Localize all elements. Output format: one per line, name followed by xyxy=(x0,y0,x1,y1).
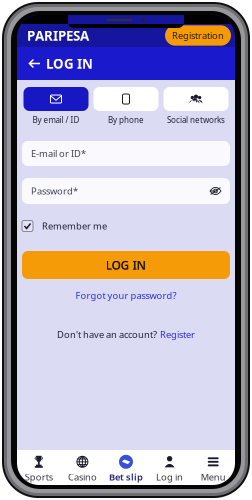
button[interactable]: Show password xyxy=(210,187,221,194)
button[interactable]: Remember me xyxy=(22,204,230,232)
button[interactable]: Forgot your password? xyxy=(55,279,196,300)
staticText: Remember me xyxy=(42,220,107,232)
staticText: Menu xyxy=(201,471,226,483)
staticText: Bet slip xyxy=(109,471,143,483)
button[interactable]: Back xyxy=(23,52,46,75)
staticText: By email / ID xyxy=(32,115,79,125)
button[interactable]: LOG IN xyxy=(22,232,230,279)
button[interactable]: Register xyxy=(160,328,195,341)
staticText: Social networks xyxy=(167,115,225,125)
staticText: LOG IN xyxy=(46,55,93,72)
staticText: Password* xyxy=(31,185,78,197)
staticText: Sports xyxy=(25,471,53,483)
staticText: Registration xyxy=(172,29,224,42)
staticText: LOG IN xyxy=(105,257,146,273)
staticText: By phone xyxy=(108,115,144,125)
staticText: E-mail or ID* xyxy=(31,147,86,160)
button[interactable]: Social networks xyxy=(163,87,228,125)
staticText: Register xyxy=(160,328,195,341)
button[interactable]: Sports xyxy=(17,455,61,483)
staticText: Don't have an account? xyxy=(57,328,157,341)
button[interactable]: Casino xyxy=(61,455,104,483)
button[interactable]: Log in xyxy=(148,455,191,483)
staticText: Casino xyxy=(68,471,97,483)
staticText: PARIPESA xyxy=(27,27,89,44)
button[interactable]: By phone xyxy=(93,87,158,125)
staticText: Forgot your password? xyxy=(75,289,176,302)
button[interactable]: Menu xyxy=(191,455,235,483)
button[interactable]: Registration xyxy=(165,25,231,46)
button[interactable]: By email / ID xyxy=(23,87,88,125)
button[interactable]: Bet slip xyxy=(104,455,148,483)
staticText: Log in xyxy=(156,471,183,483)
